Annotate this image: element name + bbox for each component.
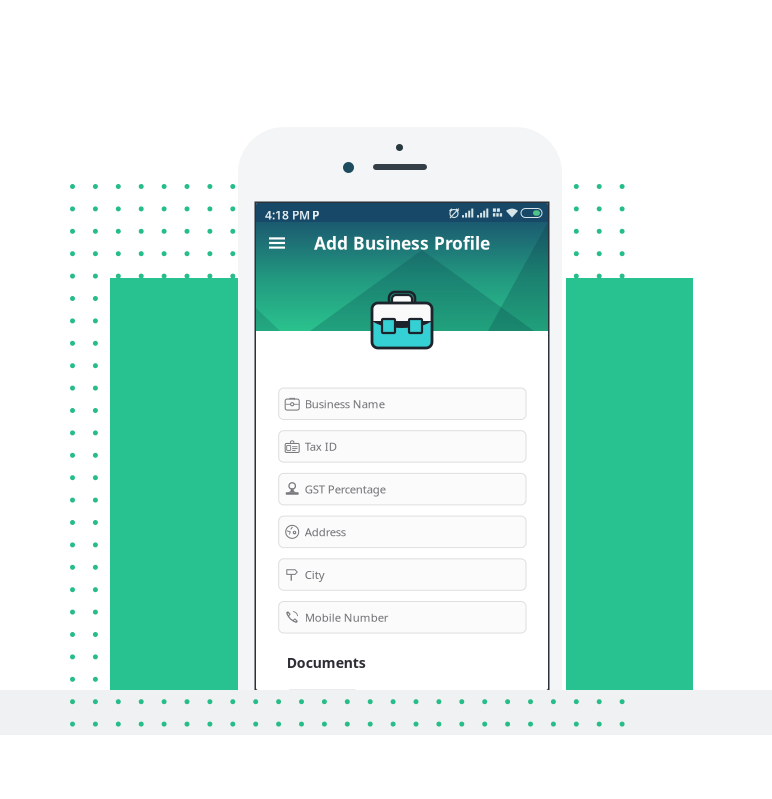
button[interactable]: City — [279, 559, 526, 590]
staticText: Business Name — [305, 396, 385, 411]
staticText: 4:18 PM — [265, 207, 310, 223]
button[interactable]: GST Percentage — [279, 473, 526, 505]
staticText: Tax ID — [305, 439, 337, 454]
button[interactable]: Address — [279, 516, 526, 548]
staticText: Mobile Number — [305, 609, 389, 625]
staticText: GST Percentage — [305, 481, 386, 497]
staticText: Documents — [287, 653, 366, 672]
button[interactable]: Tax ID — [279, 431, 526, 462]
staticText: Address — [305, 524, 346, 539]
button[interactable]: Mobile Number — [279, 601, 526, 633]
button[interactable]: Business Name — [279, 388, 526, 419]
button[interactable]: Menu — [260, 228, 294, 258]
staticText: Add Business Profile — [314, 231, 490, 254]
staticText: P — [312, 207, 319, 223]
staticText: City — [305, 567, 325, 582]
